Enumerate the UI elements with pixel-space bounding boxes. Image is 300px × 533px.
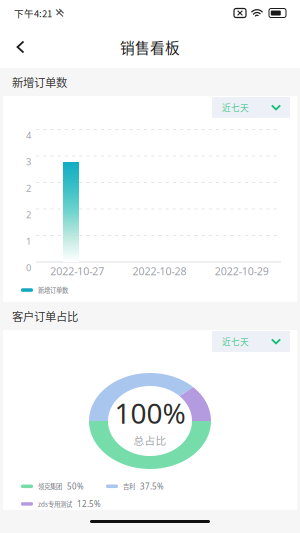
staticText: 100%	[114, 394, 185, 431]
staticText: 2	[26, 182, 31, 194]
staticText: zds专用测试	[38, 499, 72, 508]
staticText: 总占比	[133, 432, 166, 448]
staticText: 领克集团	[38, 482, 62, 491]
staticText: 近七天	[222, 335, 249, 348]
staticText: 吉利	[123, 482, 135, 491]
staticText: 0	[26, 261, 31, 274]
staticText: 2022-10-29	[215, 264, 269, 278]
staticText: 近七天	[222, 101, 249, 114]
staticText: 3	[26, 155, 31, 168]
staticText: 2022-10-28	[132, 264, 186, 278]
staticText: 下午4:21	[14, 6, 52, 20]
staticText: 新增订单数	[12, 74, 67, 90]
staticText: 50%	[67, 481, 84, 492]
button[interactable]: 近七天	[212, 97, 290, 118]
staticText: 新增订单数	[38, 285, 68, 295]
staticText: 客户订单占比	[12, 308, 78, 324]
staticText: 4	[26, 129, 31, 141]
staticText: 2	[26, 208, 31, 221]
button[interactable]: 近七天	[212, 331, 290, 352]
staticText: 销售看板	[120, 36, 180, 58]
staticText: 12.5%	[77, 499, 101, 509]
staticText: 2022-10-27	[50, 264, 104, 278]
staticText: 37.5%	[140, 481, 164, 492]
staticText: 1	[26, 235, 31, 247]
button[interactable]: Back	[8, 31, 33, 63]
